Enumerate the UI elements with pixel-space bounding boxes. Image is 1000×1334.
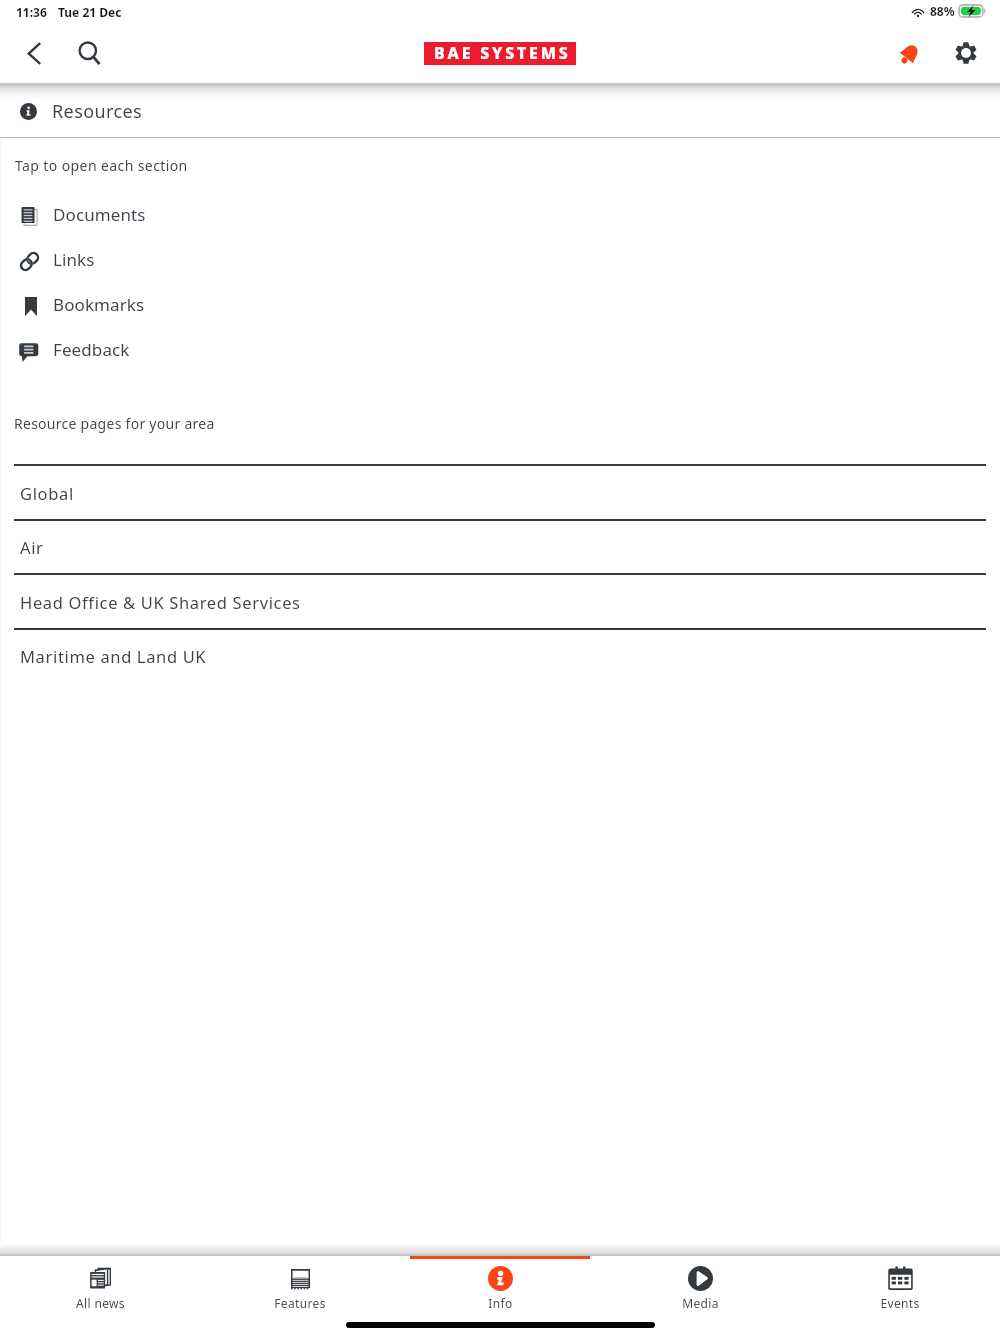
staticText: Resources bbox=[52, 99, 143, 124]
button[interactable]: Links bbox=[0, 239, 1000, 284]
staticText: Global bbox=[20, 482, 74, 504]
staticText: Info bbox=[488, 1295, 513, 1311]
button[interactable]: Media bbox=[600, 1256, 800, 1334]
staticText: 88% bbox=[930, 3, 955, 19]
button[interactable]: Events bbox=[800, 1256, 1000, 1334]
button[interactable]: Head Office & UK Shared Services bbox=[0, 573, 1000, 628]
staticText: Bookmarks bbox=[53, 293, 145, 316]
button[interactable]: Resources bbox=[0, 100, 1000, 137]
button[interactable]: Air bbox=[0, 519, 1000, 573]
button[interactable]: Back bbox=[12, 31, 56, 75]
staticText: BAE SYSTEMS bbox=[434, 42, 571, 64]
button[interactable]: Features bbox=[200, 1256, 400, 1334]
staticText: Maritime and Land UK bbox=[20, 645, 207, 667]
staticText: Air bbox=[20, 536, 44, 558]
button[interactable]: Global bbox=[0, 464, 1000, 519]
button[interactable]: Maritime and Land UK bbox=[0, 628, 1000, 682]
button[interactable]: Documents bbox=[0, 194, 1000, 239]
staticText: All news bbox=[76, 1295, 125, 1311]
staticText: Events bbox=[880, 1295, 920, 1311]
staticText: Feedback bbox=[53, 338, 130, 361]
staticText: Tap to open each section bbox=[15, 156, 188, 175]
button[interactable]: Search bbox=[67, 31, 111, 75]
button[interactable]: All news bbox=[0, 1256, 200, 1334]
button[interactable]: Bookmarks bbox=[0, 284, 1000, 329]
button[interactable]: Feedback bbox=[0, 329, 1000, 374]
button[interactable]: Notifications bbox=[887, 31, 931, 75]
staticText: Media bbox=[682, 1295, 719, 1311]
staticText: Links bbox=[53, 248, 95, 271]
button[interactable]: Info bbox=[400, 1256, 600, 1334]
staticText: Resource pages for your area bbox=[14, 414, 215, 433]
staticText: Head Office & UK Shared Services bbox=[20, 591, 301, 613]
staticText: 11:36 bbox=[16, 4, 47, 20]
staticText: Documents bbox=[53, 203, 146, 226]
staticText: Tue 21 Dec bbox=[58, 4, 122, 20]
button[interactable]: Settings bbox=[944, 31, 988, 75]
staticText: Features bbox=[274, 1295, 326, 1311]
